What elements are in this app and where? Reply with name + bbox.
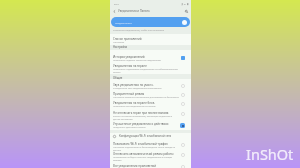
- staticText: Показывать Wi-Fi и мобильный трафик: [113, 142, 168, 146]
- button[interactable]: Отключить автоматический режим работы: [113, 152, 185, 162]
- staticText: Приоритетный режим: [113, 92, 145, 96]
- staticText: Звук уведомления по умолч.: [113, 83, 154, 87]
- staticText: Предлагать действия и ответы: [113, 126, 146, 129]
- other: Back: [113, 10, 116, 13]
- staticText: Конфигурация Wi-Fi и мобильной сети: [119, 134, 172, 138]
- button[interactable]: Показывать Wi-Fi и мобильный трафик: [113, 142, 185, 152]
- staticText: Не отключать экран при звонке вызова: [113, 111, 169, 115]
- button[interactable]: Приоритетный режим: [113, 92, 185, 99]
- staticText: Показывать все уведомления на экране: [113, 105, 156, 108]
- button[interactable]: Конфигурация Wi-Fi и мобильной сети: [113, 134, 188, 138]
- staticText: Уведомления на экране блок.: [113, 101, 155, 105]
- staticText: 9:41: [114, 2, 119, 5]
- button[interactable]: Улучшенные уведомления о действиях: [113, 122, 185, 129]
- staticText: Показывать недавно закрытые уведомления: [113, 59, 161, 62]
- staticText: Отключите уведомления, чтобы они не меша…: [113, 29, 165, 32]
- staticText: Уведомления: [115, 21, 132, 24]
- staticText: Показывать содержимое уведомлений на заб…: [113, 68, 179, 74]
- other: Search: [185, 10, 188, 13]
- button[interactable]: Уведомления на экране блок.: [113, 101, 185, 108]
- staticText: Список приложений: [113, 37, 142, 41]
- button[interactable]: Не отключать экран при звонке вызова: [113, 111, 185, 121]
- staticText: Уведомления на экране: [113, 64, 147, 68]
- button[interactable]: История уведомлений: [113, 55, 185, 62]
- staticText: Уведомления и Панель: [118, 9, 185, 13]
- staticText: InShOt: [246, 144, 294, 164]
- staticText: Значок на иконке приложения, мигающий ин…: [113, 115, 179, 121]
- staticText: Стандартный звук уведомлений приложений: [113, 87, 162, 90]
- button[interactable]: Уведомления на экране: [113, 64, 185, 74]
- staticText: История уведомлений: [113, 55, 145, 59]
- button[interactable]: Все уведомления приложений: [113, 164, 185, 168]
- staticText: ◔ ıl| ▮: [181, 2, 189, 5]
- staticText: Настройка: [113, 45, 128, 49]
- button[interactable]: Уведомления: [111, 17, 190, 27]
- staticText: Отключить автоматический режим работы: [113, 152, 174, 156]
- button[interactable]: Список приложений: [113, 37, 185, 44]
- staticText: Общие: [113, 76, 123, 80]
- staticText: Все уведомления приложений: [113, 164, 157, 168]
- button[interactable]: Звук уведомления по умолч.: [113, 83, 185, 90]
- staticText: Настройка: [113, 41, 125, 44]
- staticText: Приложения не будут получать уведомления…: [113, 156, 179, 162]
- button[interactable]: Back: [113, 7, 188, 15]
- staticText: Настройка подключения к беспроводной сет…: [113, 146, 179, 152]
- staticText: Улучшенные уведомления о действиях: [113, 122, 169, 126]
- staticText: Настройте правила и исключения для режим…: [113, 96, 179, 99]
